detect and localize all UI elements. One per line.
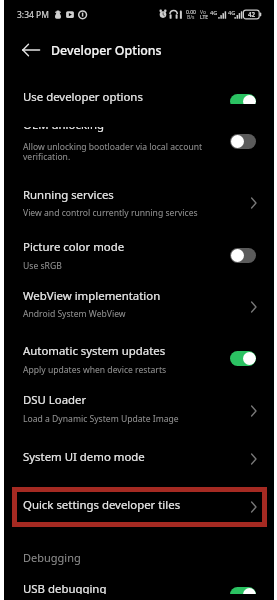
staticText: Allow unlocking bootloader via local acc…: [23, 141, 203, 153]
button[interactable]: DSU Loader: [0, 390, 277, 424]
staticText: Picture color mode: [23, 239, 125, 255]
staticText: USB debugging: [23, 581, 107, 597]
other: Open: [246, 196, 260, 210]
staticText: verification.: [23, 151, 71, 163]
button[interactable]: Picture color mode: [0, 236, 277, 270]
other: Open: [246, 500, 260, 514]
staticText: Debugging: [23, 550, 81, 565]
staticText: Android System WebView: [23, 308, 126, 320]
other: Open: [246, 300, 260, 314]
button[interactable]: Back: [19, 38, 43, 62]
staticText: WebView implementation: [23, 288, 161, 304]
staticText: Use sRGB: [23, 260, 62, 272]
staticText: Automatic system updates: [23, 343, 166, 359]
button[interactable]: Automatic system updates: [0, 340, 277, 374]
staticText: 0.00: [186, 9, 196, 16]
staticText: Use developer options: [23, 89, 143, 105]
button[interactable]: System UI demo mode: [0, 444, 277, 476]
staticText: B/s: [187, 14, 195, 21]
button[interactable]: Use developer options: [0, 80, 277, 114]
button[interactable]: OEM unlocking: [0, 114, 277, 170]
button[interactable]: Toggle on: [230, 94, 256, 109]
staticText: System UI demo mode: [23, 449, 145, 465]
staticText: Vo: [200, 9, 206, 16]
staticText: View and control currently running servi…: [23, 207, 198, 219]
button[interactable]: Toggle on: [230, 587, 256, 600]
staticText: Apply updates when device restarts: [23, 364, 167, 376]
staticText: 4G: [228, 9, 236, 17]
staticText: OEM unlocking: [23, 117, 104, 133]
button[interactable]: Quick settings developer tiles: [0, 492, 277, 524]
staticText: LTE: [200, 14, 209, 21]
button[interactable]: WebView implementation: [0, 285, 277, 319]
staticText: Running services: [23, 187, 114, 203]
button[interactable]: Toggle on: [230, 351, 256, 366]
staticText: 42: [248, 10, 256, 18]
button[interactable]: Toggle off: [230, 248, 256, 263]
button[interactable]: Toggle off: [230, 134, 256, 149]
staticText: Developer Options: [51, 42, 162, 59]
staticText: 4G: [210, 9, 218, 17]
other: Open: [246, 452, 260, 466]
staticText: 3:34 PM: [17, 9, 49, 21]
staticText: Load a Dynamic System Update Image: [23, 413, 179, 425]
other: Open: [246, 404, 260, 418]
staticText: DSU Loader: [23, 392, 87, 408]
button[interactable]: Running services: [0, 184, 277, 218]
button[interactable]: USB debugging: [0, 576, 277, 600]
staticText: Quick settings developer tiles: [23, 497, 181, 513]
